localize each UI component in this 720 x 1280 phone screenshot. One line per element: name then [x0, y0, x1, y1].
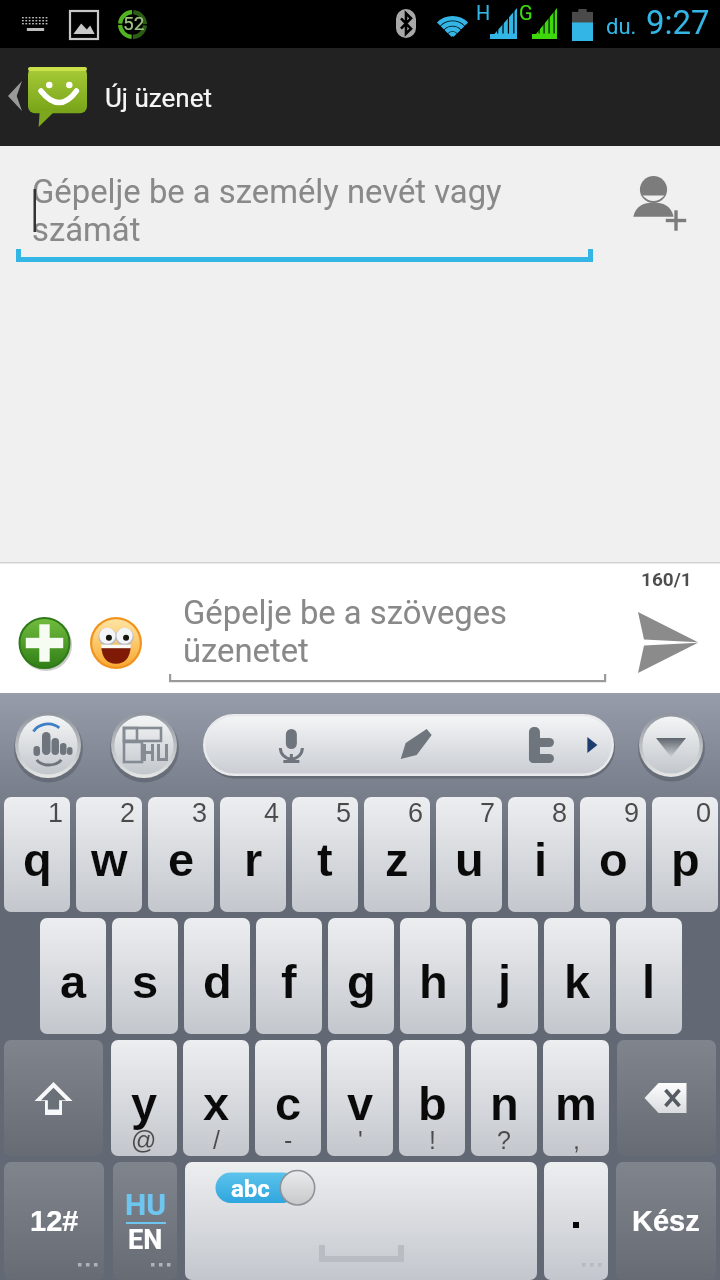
staticText: Kész [632, 1205, 700, 1237]
staticText: 1 [48, 798, 64, 828]
staticText: 160/1 [641, 568, 692, 590]
staticText: d [203, 955, 232, 1008]
button[interactable]: Space [185, 1162, 537, 1280]
button[interactable]: i [508, 797, 574, 912]
staticText: H [476, 1, 491, 24]
staticText: ? [497, 1126, 511, 1154]
button[interactable]: Hide keyboard [639, 713, 703, 777]
staticText: t [317, 833, 333, 886]
staticText: g [347, 955, 376, 1008]
button[interactable]: Add attachment [18, 617, 70, 669]
staticText: 9 [624, 798, 640, 828]
staticText: r [244, 833, 263, 886]
staticText: 4 [264, 798, 280, 828]
staticText: q [23, 833, 52, 886]
button[interactable]: 12# [4, 1162, 104, 1280]
staticText: G [519, 1, 533, 24]
staticText: / [213, 1126, 220, 1154]
button[interactable]: x [183, 1040, 249, 1156]
staticText: k [564, 955, 591, 1008]
button[interactable]: a [40, 918, 106, 1034]
button[interactable]: h [400, 918, 466, 1034]
button[interactable]: Add recipient from contacts [616, 159, 704, 247]
button[interactable]: b [399, 1040, 465, 1156]
staticText: e [168, 833, 195, 886]
button[interactable]: Period [544, 1162, 608, 1280]
button[interactable]: n [471, 1040, 537, 1156]
staticText: HU [125, 1187, 166, 1222]
staticText: u [455, 833, 484, 886]
staticText: s [132, 955, 159, 1008]
staticText: f [281, 955, 297, 1008]
staticText: b [418, 1077, 447, 1130]
staticText: l [642, 955, 656, 1008]
staticText: 9:27 [646, 3, 710, 42]
staticText: du. [606, 14, 637, 40]
button[interactable]: s [112, 918, 178, 1034]
button[interactable]: Input options [203, 714, 614, 776]
button[interactable]: q [4, 797, 70, 912]
button[interactable]: t [292, 797, 358, 912]
button[interactable]: r [220, 797, 286, 912]
button[interactable]: Change language [113, 1162, 177, 1280]
button[interactable]: Back [0, 48, 96, 146]
staticText: w [91, 833, 128, 886]
button[interactable]: y [111, 1040, 177, 1156]
staticText: i [534, 833, 548, 886]
staticText: a [60, 955, 87, 1008]
button[interactable]: Send message [628, 602, 710, 684]
staticText: n [490, 1077, 519, 1130]
button[interactable]: w [76, 797, 142, 912]
staticText: v [347, 1077, 374, 1130]
staticText: 5 [336, 798, 352, 828]
staticText: , [573, 1126, 580, 1154]
staticText: @ [131, 1126, 157, 1154]
button[interactable]: p [652, 797, 718, 912]
button[interactable]: Shift [4, 1040, 103, 1156]
staticText: h [419, 955, 448, 1008]
staticText: Új üzenet [105, 83, 212, 113]
button[interactable]: c [255, 1040, 321, 1156]
staticText: - [284, 1126, 293, 1154]
staticText: 8 [552, 798, 568, 828]
staticText: Gépelje be a szöveges üzenetet [183, 594, 528, 670]
button[interactable]: o [580, 797, 646, 912]
button[interactable]: Kész [616, 1162, 716, 1280]
button[interactable]: u [436, 797, 502, 912]
button[interactable]: Backspace [617, 1040, 716, 1156]
button[interactable]: k [544, 918, 610, 1034]
button[interactable]: z [364, 797, 430, 912]
button[interactable]: d [184, 918, 250, 1034]
staticText: Gépelje be a személy nevét vagy számát [32, 173, 532, 249]
staticText: m [555, 1077, 597, 1130]
staticText: 0 [696, 798, 712, 828]
staticText: x [203, 1077, 230, 1130]
button[interactable]: f [256, 918, 322, 1034]
staticText: y [131, 1077, 158, 1130]
button[interactable]: l [616, 918, 682, 1034]
button[interactable]: j [472, 918, 538, 1034]
button[interactable]: g [328, 918, 394, 1034]
staticText: ! [429, 1126, 436, 1154]
button[interactable]: v [327, 1040, 393, 1156]
staticText: p [671, 833, 700, 886]
staticText: 3 [192, 798, 208, 828]
staticText: ' [358, 1126, 363, 1154]
button[interactable]: m [543, 1040, 609, 1156]
staticText: z [385, 833, 409, 886]
button[interactable]: Handwriting input [15, 712, 81, 778]
staticText: 2 [120, 798, 136, 828]
staticText: EN [128, 1224, 163, 1256]
staticText: o [599, 833, 628, 886]
staticText: c [275, 1077, 302, 1130]
button[interactable]: e [148, 797, 214, 912]
staticText: 7 [480, 798, 496, 828]
button[interactable]: Insert smiley [90, 617, 142, 669]
button[interactable]: Select input language [111, 712, 177, 778]
staticText: j [498, 955, 512, 1008]
staticText: 12# [30, 1205, 79, 1237]
staticText: 6 [408, 798, 424, 828]
staticText: 52 [123, 12, 145, 34]
staticText: abc [231, 1175, 270, 1203]
